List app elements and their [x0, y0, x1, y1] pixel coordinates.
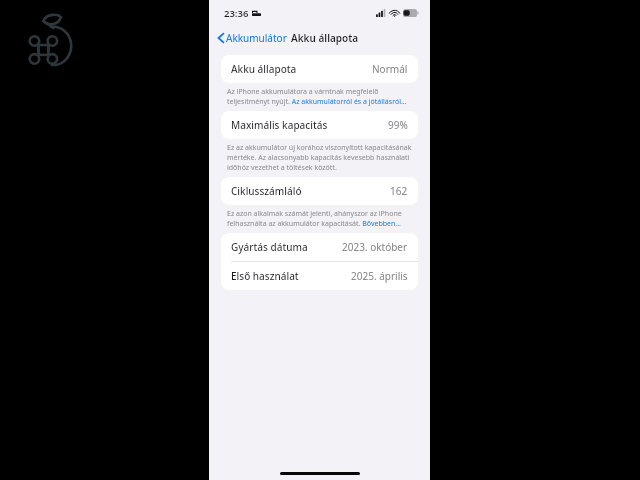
staticText: Akkumulátor: [226, 31, 287, 45]
staticText: Ez az akkumulátor új korához viszonyítot…: [227, 143, 414, 173]
button[interactable]: Első használat: [221, 262, 418, 290]
staticText: 162: [390, 184, 408, 198]
button[interactable]: Akku állapota: [221, 55, 418, 83]
staticText: Első használat: [231, 269, 299, 283]
staticText: Normál: [372, 62, 408, 76]
staticText: 2025. április: [351, 269, 408, 283]
button[interactable]: Ciklusszámláló: [221, 177, 418, 205]
staticText: Gyártás dátuma: [231, 240, 308, 254]
button[interactable]: Gyártás dátuma: [221, 233, 418, 261]
staticText: 23:36: [224, 7, 249, 20]
staticText: 2023. október: [342, 240, 408, 254]
staticText: Akku állapota: [291, 31, 359, 45]
staticText: Maximális kapacitás: [231, 118, 328, 132]
staticText: Ciklusszámláló: [231, 184, 302, 198]
button[interactable]: Maximális kapacitás: [221, 111, 418, 139]
staticText: Az iPhone akkumulátora a várntnak megfel…: [227, 87, 414, 107]
staticText: Akku állapota: [231, 62, 297, 76]
staticText: Ez azon alkalmak számát jelenti, ahánysz…: [227, 209, 414, 229]
button[interactable]: Akkumulátor: [209, 28, 292, 48]
staticText: 99%: [388, 118, 408, 132]
other: Apple logo: [26, 14, 84, 72]
